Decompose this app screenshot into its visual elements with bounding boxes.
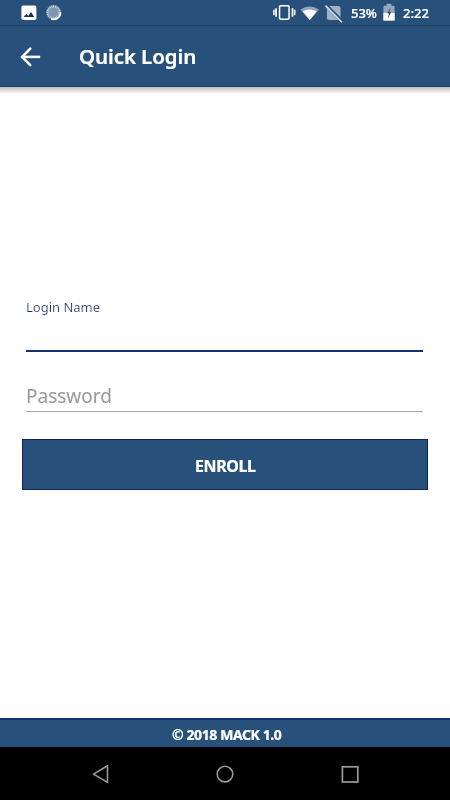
staticText: Quick Login [79,42,197,70]
staticText: Password [26,383,112,409]
staticText: 53% [351,4,377,22]
staticText: Login Name [26,298,101,316]
staticText: 2:22 [403,4,429,22]
button[interactable]: Back [76,749,124,797]
button[interactable]: Back [0,29,56,85]
button[interactable]: ENROLL [22,439,428,490]
button[interactable]: Home [201,749,249,797]
staticText: ENROLL [195,455,256,477]
staticText: © 2018 MACK 1.0 [172,725,282,744]
button[interactable]: Recents [325,749,373,797]
button[interactable]: Login Name [26,292,423,352]
button[interactable]: Password [26,380,423,412]
